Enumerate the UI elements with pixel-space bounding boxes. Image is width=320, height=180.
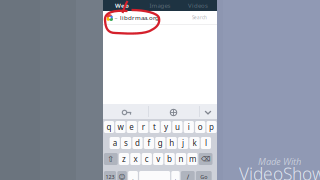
staticText: l xyxy=(205,138,207,148)
button[interactable]: ⇧ xyxy=(104,153,118,165)
staticText: Images xyxy=(149,1,170,10)
staticText: d xyxy=(135,138,140,148)
button[interactable]: s xyxy=(121,137,131,149)
staticText: ⇧ xyxy=(107,154,114,164)
staticText: Videos xyxy=(188,1,208,10)
staticText: q xyxy=(106,122,111,132)
button[interactable]: u xyxy=(172,121,182,133)
staticText: h xyxy=(169,138,174,148)
staticText: / xyxy=(187,172,189,180)
button[interactable]: r xyxy=(138,121,148,133)
button[interactable]: m xyxy=(187,153,197,165)
staticText: w xyxy=(117,122,123,132)
button[interactable]: Hide keyboard xyxy=(199,105,217,120)
button[interactable]: Switch keyboard xyxy=(148,105,199,120)
button[interactable]: n xyxy=(176,153,186,165)
staticText: – xyxy=(114,13,117,21)
staticText: m xyxy=(189,154,196,164)
staticText: g xyxy=(158,138,163,148)
staticText: t xyxy=(153,122,156,132)
button[interactable]: l xyxy=(201,137,211,149)
staticText: Made With xyxy=(258,155,301,168)
staticText: p xyxy=(209,122,214,132)
staticText: c xyxy=(145,154,149,164)
staticText: b xyxy=(167,154,172,164)
staticText: 123 xyxy=(105,173,114,180)
button[interactable]: y xyxy=(161,121,171,133)
staticText: VideoShow xyxy=(239,162,320,180)
staticText: u xyxy=(175,122,180,132)
staticText: j xyxy=(182,138,184,148)
button[interactable]: 123 xyxy=(104,171,116,180)
staticText: v xyxy=(156,154,160,164)
button[interactable]: Images xyxy=(141,0,179,11)
button[interactable]: ⌫ xyxy=(199,153,212,165)
button[interactable]: k xyxy=(189,137,200,149)
button[interactable]: – xyxy=(103,11,217,24)
staticText: i xyxy=(188,122,190,132)
staticText: n xyxy=(178,154,183,164)
button[interactable]: c xyxy=(142,153,152,165)
staticText: f xyxy=(147,138,150,148)
staticText: o xyxy=(198,122,203,132)
staticText: k xyxy=(192,138,196,148)
button[interactable]: . xyxy=(171,171,180,180)
button[interactable]: v xyxy=(153,153,163,165)
button[interactable]: a xyxy=(110,137,120,149)
button[interactable]: b xyxy=(164,153,175,165)
button[interactable]: Web xyxy=(103,0,141,11)
button[interactable]: d xyxy=(132,137,143,149)
button[interactable]: t xyxy=(149,121,160,133)
staticText: s xyxy=(124,138,128,148)
staticText: Search xyxy=(192,14,207,21)
staticText: a xyxy=(113,138,117,148)
button[interactable]: g xyxy=(155,137,165,149)
button[interactable]: i xyxy=(184,121,194,133)
staticText: . xyxy=(174,172,176,180)
button[interactable]: w xyxy=(115,121,125,133)
button[interactable]: Passwords xyxy=(104,105,149,120)
staticText: ☺ xyxy=(119,173,126,180)
staticText: Web xyxy=(115,1,129,10)
staticText: x xyxy=(133,154,137,164)
staticText: ⌫ xyxy=(201,155,210,163)
button[interactable]: f xyxy=(144,137,154,149)
staticText: y xyxy=(164,122,168,132)
staticText: r xyxy=(142,122,145,132)
button[interactable]: o xyxy=(195,121,205,133)
button[interactable]: x xyxy=(130,153,140,165)
button[interactable]: q xyxy=(104,121,114,133)
staticText: . xyxy=(132,172,134,180)
staticText: z xyxy=(122,154,126,164)
button[interactable]: h xyxy=(167,137,177,149)
button[interactable]: p xyxy=(206,121,217,133)
button[interactable]: e xyxy=(127,121,137,133)
button[interactable]: z xyxy=(119,153,129,165)
staticText: libdrmaa.org xyxy=(120,13,159,22)
button[interactable]: / xyxy=(181,171,195,180)
staticText: Go xyxy=(200,173,207,180)
button[interactable]: Videos xyxy=(179,0,217,11)
button[interactable]: . xyxy=(128,171,138,180)
button[interactable]: Go xyxy=(196,171,212,180)
staticText: e xyxy=(129,122,134,132)
button[interactable]: ☺ xyxy=(117,171,127,180)
button[interactable]: j xyxy=(178,137,188,149)
